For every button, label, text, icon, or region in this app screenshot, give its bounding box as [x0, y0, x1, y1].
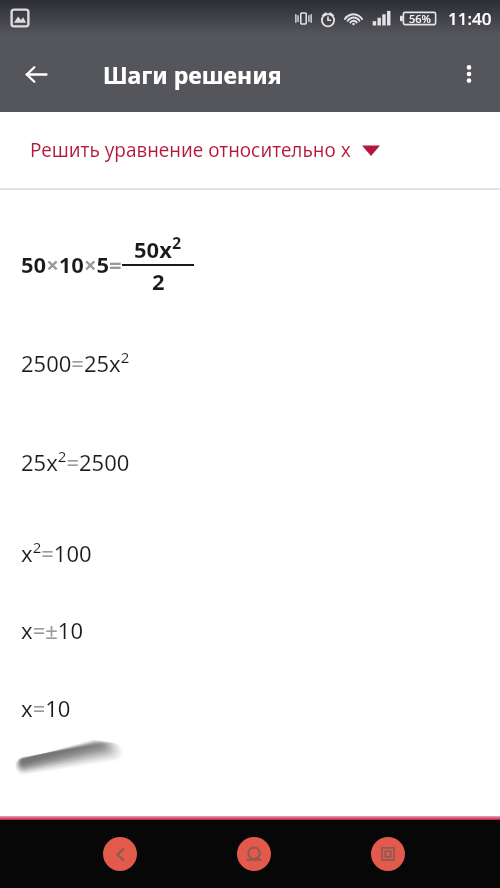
staticText: x=±10: [21, 615, 83, 645]
button[interactable]: Home: [224, 824, 284, 884]
staticText: 2500=25x2: [21, 347, 130, 378]
button[interactable]: More options: [446, 51, 492, 97]
staticText: 50×10×5=: [21, 249, 122, 279]
staticText: 11:40: [448, 7, 492, 30]
button[interactable]: Back: [12, 50, 60, 98]
staticText: x=10: [21, 693, 71, 723]
staticText: 25x2=2500: [21, 446, 130, 477]
button[interactable]: Back: [90, 824, 150, 884]
button[interactable]: Решить уравнение относительно x: [0, 112, 500, 188]
staticText: Шаги решения: [103, 59, 282, 90]
staticText: Решить уравнение относительно x: [30, 137, 351, 163]
staticText: 50x2: [134, 232, 182, 264]
staticText: 56%: [409, 11, 431, 26]
button[interactable]: Recent apps: [358, 824, 418, 884]
staticText: 2: [152, 266, 165, 296]
staticText: x2=100: [21, 537, 92, 568]
